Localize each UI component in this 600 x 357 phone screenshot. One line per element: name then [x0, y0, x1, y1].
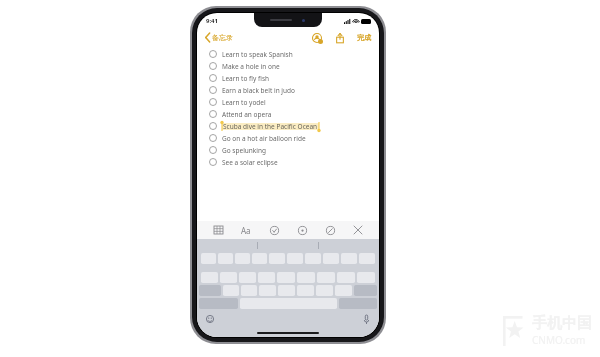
button[interactable]: Learn to yodel [209, 96, 379, 108]
button[interactable]: 备忘录 [204, 33, 234, 42]
staticText: Go on a hot air balloon ride [222, 134, 306, 143]
staticText: Attend an opera [222, 110, 272, 119]
staticText: 备忘录 [212, 33, 233, 42]
button[interactable]: Scuba dive in the Pacific Ocean [209, 120, 379, 132]
staticText: 手机中国 [532, 314, 592, 333]
staticText: Earn a black belt in judo [222, 86, 295, 95]
button[interactable]: Share [333, 31, 346, 44]
staticText: Learn to fly fish [222, 74, 270, 83]
staticText: Go spelunking [222, 146, 267, 155]
button[interactable]: Learn to speak Spanish [209, 48, 379, 60]
button[interactable]: Learn to fly fish [209, 72, 379, 84]
button[interactable]: Go on a hot air balloon ride [209, 132, 379, 144]
button[interactable]: Aa [239, 223, 253, 237]
staticText: Scuba dive in the Pacific Ocean [223, 122, 318, 131]
button[interactable]: Earn a black belt in judo [209, 84, 379, 96]
staticText: Aa [241, 225, 251, 236]
button[interactable]: Draw [323, 223, 337, 237]
button[interactable]: Camera [295, 223, 309, 237]
button[interactable]: Make a hole in one [209, 60, 379, 72]
staticText: CNMO.com [532, 333, 586, 347]
staticText: See a solar eclipse [222, 158, 278, 167]
button[interactable]: Close [351, 223, 365, 237]
button[interactable]: See a solar eclipse [209, 156, 379, 168]
staticText: 9:41 [206, 17, 218, 25]
button[interactable]: Checklist [267, 223, 281, 237]
button[interactable]: Attend an opera [209, 108, 379, 120]
button[interactable]: Go spelunking [209, 144, 379, 156]
button[interactable]: Emoji [204, 313, 216, 325]
staticText: Learn to yodel [222, 98, 266, 107]
staticText: Learn to speak Spanish [222, 50, 293, 59]
staticText: Make a hole in one [222, 62, 280, 71]
button[interactable]: Dictation [360, 313, 372, 325]
button[interactable]: 完成 [356, 33, 372, 42]
button[interactable]: Table [211, 223, 225, 237]
button[interactable]: Add people [310, 31, 323, 44]
